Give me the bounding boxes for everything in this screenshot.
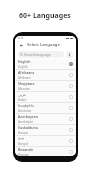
staticText: Shqiptare (18, 81, 35, 86)
staticText: Arabic (18, 98, 27, 102)
button[interactable]: հայերեն (15, 103, 76, 113)
button[interactable]: Back (18, 42, 24, 48)
staticText: հայերեն (18, 104, 34, 108)
staticText: Euskalduna (18, 125, 38, 130)
staticText: عربى (18, 93, 27, 97)
button[interactable]: عربى (15, 92, 76, 102)
staticText: Search language (24, 52, 51, 57)
staticText: English (18, 59, 31, 64)
staticText: Albanian (18, 87, 30, 91)
button[interactable]: বাংলা (15, 136, 76, 146)
staticText: English (18, 65, 28, 69)
staticText: বাংলা (18, 137, 24, 141)
button[interactable]: English (15, 59, 76, 69)
staticText: 60+ Languages (19, 11, 71, 21)
staticText: Azerbaijani (18, 120, 34, 124)
button[interactable]: Bosanski (15, 147, 76, 156)
button[interactable]: Search language (18, 51, 64, 58)
staticText: Select Language (27, 42, 60, 48)
button[interactable]: Shqiptare (15, 81, 76, 91)
staticText: Afrikaans (18, 76, 31, 80)
button[interactable]: Afrikaans (15, 70, 76, 80)
staticText: Armenian (18, 109, 32, 113)
staticText: Bosnian (18, 153, 29, 156)
staticText: Bosanski (18, 147, 34, 152)
staticText: Afrikaans (18, 70, 35, 75)
staticText: Bengali (18, 142, 29, 146)
staticText: Basque (18, 131, 29, 135)
button[interactable]: Euskalduna (15, 125, 76, 135)
button[interactable]: Voice search (66, 51, 73, 58)
button[interactable]: Azərbaycan (15, 114, 76, 124)
staticText: Azərbaycan (18, 114, 38, 119)
